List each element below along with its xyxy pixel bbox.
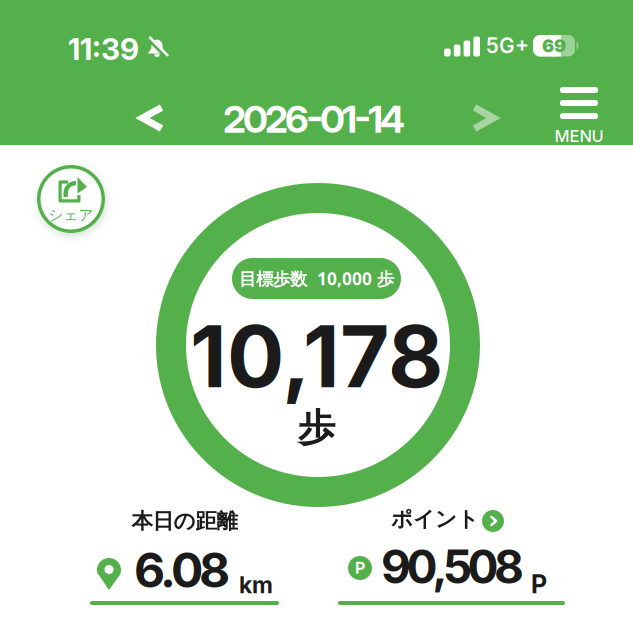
staticText: 2026-01-14 — [223, 96, 405, 142]
staticText: MENU — [554, 126, 603, 146]
button[interactable]: Menu — [553, 87, 605, 146]
button[interactable]: ポイント — [338, 503, 565, 605]
staticText: P — [531, 569, 547, 599]
staticText: 10,178 — [190, 305, 443, 408]
staticText: 本日の距離 — [131, 508, 237, 534]
staticText: ポイント — [391, 506, 479, 532]
staticText: 69 — [542, 35, 566, 57]
button[interactable]: Previous day — [139, 104, 165, 132]
staticText: 90,508 — [381, 539, 524, 595]
staticText: 6.08 — [134, 541, 230, 599]
staticText: 11:39 — [68, 31, 139, 67]
staticText: シェア — [48, 206, 93, 224]
staticText: 歩 — [298, 405, 335, 451]
button[interactable]: シェア — [37, 165, 105, 233]
button[interactable]: Next day — [471, 104, 497, 132]
staticText: P — [355, 558, 365, 578]
staticText: 5G+ — [486, 33, 529, 58]
staticText: 目標歩数 10,000 歩 — [239, 267, 394, 290]
staticText: km — [239, 571, 273, 599]
